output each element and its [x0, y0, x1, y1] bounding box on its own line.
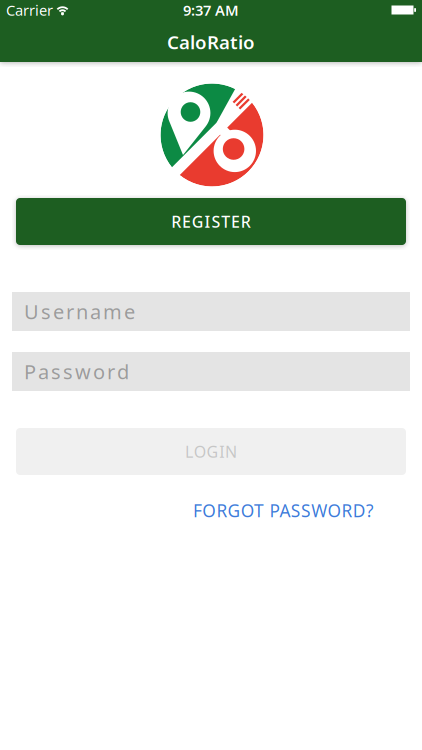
button[interactable]: Password — [12, 352, 410, 391]
staticText: 9:37 AM — [183, 0, 239, 20]
staticText: LOGIN — [185, 441, 237, 462]
staticText: CaloRatio — [167, 30, 255, 54]
button[interactable]: LOGIN — [16, 428, 406, 475]
staticText: Password — [24, 358, 136, 385]
staticText: Carrier — [6, 0, 53, 20]
button[interactable]: FORGOT PASSWORD? — [193, 499, 374, 522]
staticText: REGISTER — [171, 211, 251, 232]
staticText: FORGOT PASSWORD? — [193, 499, 374, 522]
staticText: Username — [24, 298, 142, 325]
button[interactable]: REGISTER — [16, 198, 406, 245]
button[interactable]: Username — [12, 292, 410, 331]
